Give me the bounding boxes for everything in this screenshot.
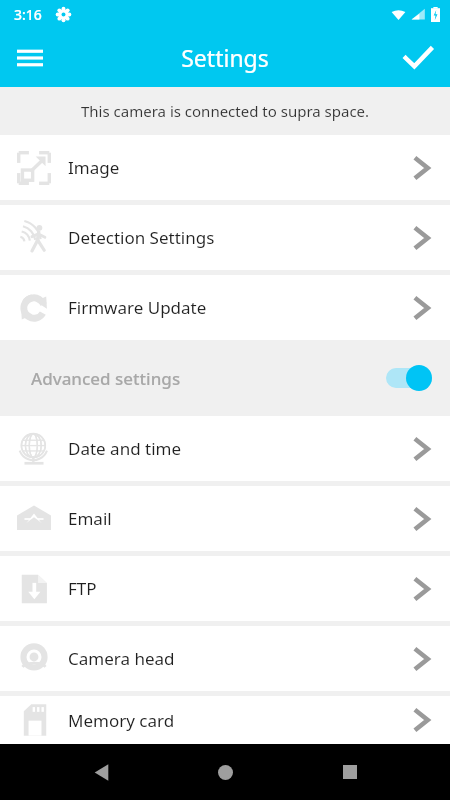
button[interactable]: Advanced settings	[0, 340, 450, 416]
button[interactable]: Detection Settings	[0, 205, 450, 270]
button[interactable]: Email	[0, 486, 450, 551]
button[interactable]: Recents	[326, 748, 374, 796]
staticText: Settings	[181, 42, 269, 73]
staticText: Date and time	[68, 437, 394, 460]
button[interactable]: Menu	[6, 34, 54, 82]
staticText: Email	[68, 507, 394, 530]
staticText: Advanced settings	[31, 367, 386, 390]
button[interactable]: Back	[77, 748, 125, 796]
staticText: Camera head	[68, 647, 394, 670]
button[interactable]: FTP	[0, 556, 450, 621]
staticText: Image	[68, 156, 394, 179]
button[interactable]: Date and time	[0, 416, 450, 481]
button[interactable]: Home	[201, 748, 249, 796]
button[interactable]: Firmware Update	[0, 275, 450, 340]
staticText: Memory card	[68, 709, 394, 732]
staticText: FTP	[68, 577, 394, 600]
staticText: Firmware Update	[68, 296, 394, 319]
button[interactable]: Memory card	[0, 696, 450, 744]
button[interactable]: Camera head	[0, 626, 450, 691]
button[interactable]: Image	[0, 135, 450, 200]
staticText: This camera is connected to supra space.	[81, 101, 370, 121]
staticText: 3:16	[14, 5, 42, 24]
staticText: Detection Settings	[68, 226, 394, 249]
button[interactable]: Confirm	[394, 34, 442, 82]
